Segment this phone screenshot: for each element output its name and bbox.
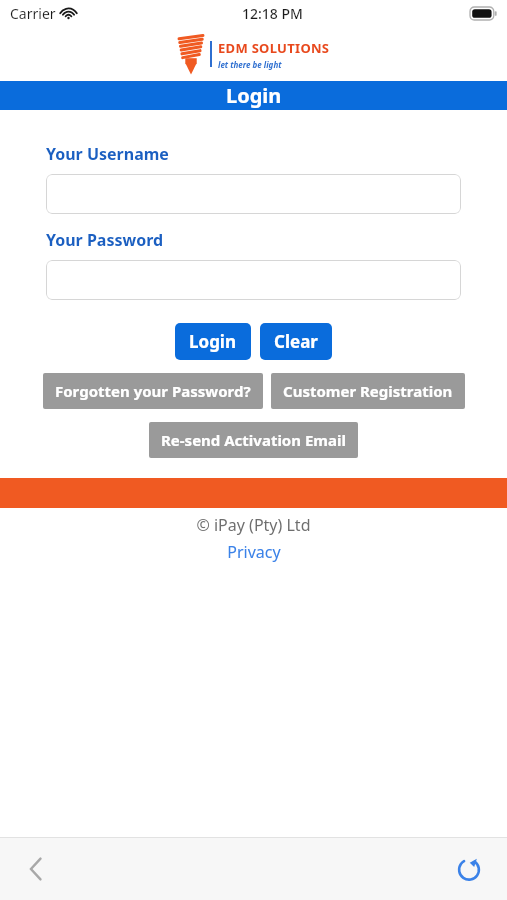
staticText: Carrier xyxy=(10,4,56,23)
button[interactable] xyxy=(46,174,461,214)
staticText: © iPay (Pty) Ltd xyxy=(0,514,507,536)
staticText: Re-send Activation Email xyxy=(161,430,346,450)
button[interactable]: Privacy xyxy=(227,541,281,563)
staticText: Clear xyxy=(274,330,318,353)
staticText: Your Password xyxy=(46,229,164,251)
button[interactable]: Reload xyxy=(447,847,491,891)
button[interactable]: Clear xyxy=(260,323,332,360)
staticText: Login xyxy=(226,82,282,109)
staticText: EDM SOLUTIONS xyxy=(218,39,330,57)
button[interactable]: Login xyxy=(175,323,251,360)
button[interactable] xyxy=(46,260,461,300)
staticText: let there be light xyxy=(218,59,282,70)
staticText: Privacy xyxy=(227,541,281,563)
button[interactable]: Back xyxy=(14,847,58,891)
staticText: Login xyxy=(189,330,237,353)
button[interactable]: Forgotten your Password? xyxy=(43,373,263,409)
button[interactable]: Re-send Activation Email xyxy=(149,422,358,458)
button[interactable]: Customer Registration xyxy=(271,373,465,409)
staticText: Customer Registration xyxy=(283,381,453,401)
staticText: 12:18 PM xyxy=(242,4,303,23)
staticText: Your Username xyxy=(46,143,169,165)
staticText: Forgotten your Password? xyxy=(55,381,251,401)
